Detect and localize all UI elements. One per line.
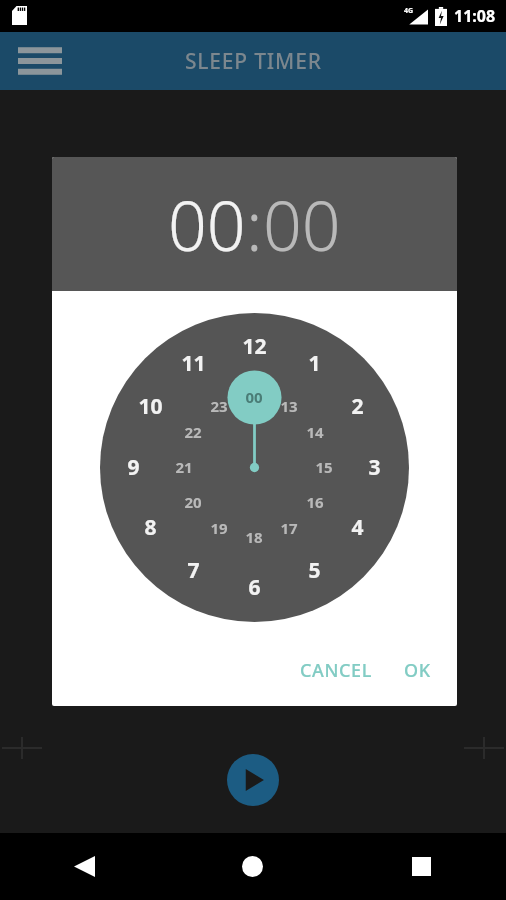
button[interactable]: Play: [227, 754, 279, 806]
staticText: 19: [210, 518, 228, 538]
staticText: 16: [306, 492, 324, 512]
staticText: 5: [308, 556, 321, 585]
staticText: 11:08: [454, 5, 496, 27]
staticText: 2: [351, 392, 364, 421]
staticText: 20: [184, 492, 202, 512]
staticText: 1: [308, 349, 321, 378]
staticText: 4: [351, 513, 364, 542]
staticText: 23: [210, 396, 228, 416]
staticText: 21: [175, 457, 193, 477]
button[interactable]: CANCEL: [296, 648, 376, 692]
staticText: 17: [280, 518, 298, 538]
button[interactable]: 00: [263, 178, 341, 271]
button[interactable]: Home: [168, 833, 337, 900]
button[interactable]: Back: [0, 833, 168, 900]
staticText: 12: [242, 332, 267, 361]
button[interactable]: Open navigation drawer: [8, 32, 72, 90]
button[interactable]: 00: [168, 178, 246, 271]
staticText: 22: [184, 422, 202, 442]
staticText: 4G: [404, 6, 414, 16]
staticText: 10: [138, 392, 163, 421]
staticText: SLEEP TIMER: [185, 47, 322, 76]
staticText: 18: [245, 527, 263, 547]
staticText: 8: [144, 513, 157, 542]
staticText: 15: [315, 457, 333, 477]
staticText: 13: [280, 396, 298, 416]
staticText: OK: [404, 658, 431, 683]
staticText: 3: [368, 453, 381, 482]
staticText: 11: [181, 349, 206, 378]
staticText: :: [246, 178, 263, 271]
staticText: CANCEL: [300, 658, 372, 683]
button[interactable]: OK: [400, 648, 435, 692]
button[interactable]: Recent apps: [337, 833, 506, 900]
staticText: 9: [127, 453, 140, 482]
staticText: 00: [245, 387, 263, 407]
staticText: 7: [187, 556, 200, 585]
staticText: 14: [306, 422, 324, 442]
staticText: 6: [248, 573, 261, 602]
